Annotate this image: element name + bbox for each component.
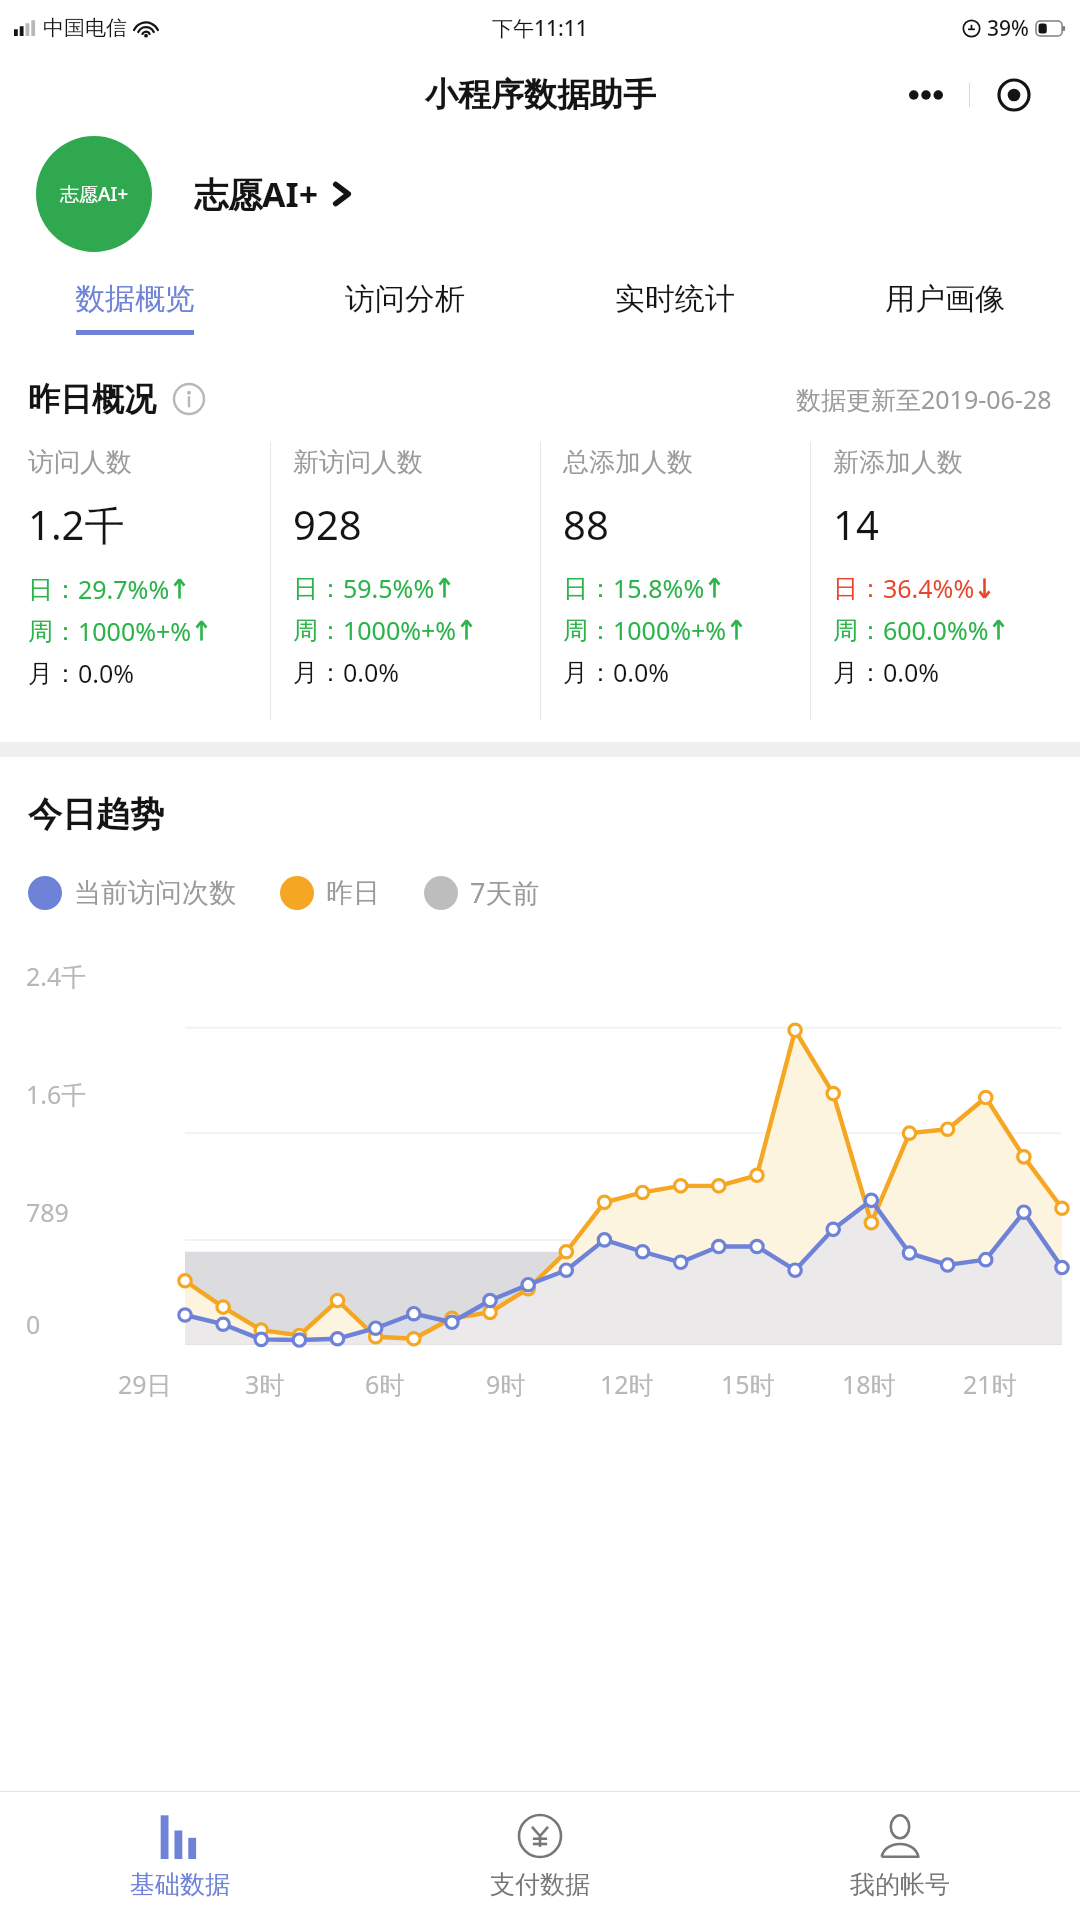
staticText: 18时 xyxy=(842,1367,896,1401)
staticText: 今日趋势 xyxy=(28,793,164,836)
button[interactable]: Info xyxy=(172,382,206,416)
staticText: 1000%+% xyxy=(343,613,457,647)
staticText: 14 xyxy=(833,497,879,551)
staticText: 月： xyxy=(28,658,78,689)
staticText: 29日 xyxy=(118,1367,172,1401)
button[interactable]: 访问分析 xyxy=(270,274,540,362)
staticText: 昨日 xyxy=(326,876,380,910)
staticText: 新添加人数 xyxy=(833,446,963,479)
staticText: 7天前 xyxy=(470,874,540,911)
staticText: 志愿AI+ xyxy=(194,171,319,217)
staticText: 0.0% xyxy=(343,655,400,689)
staticText: 我的帐号 xyxy=(850,1869,950,1900)
staticText: 访问分析 xyxy=(345,280,465,318)
staticText: 基础数据 xyxy=(130,1869,230,1900)
staticText: 15.8%% xyxy=(613,571,705,605)
staticText: 0.0% xyxy=(78,656,135,690)
staticText: 周： xyxy=(28,616,78,647)
staticText: 3时 xyxy=(245,1367,285,1401)
staticText: 访问人数 xyxy=(28,446,132,479)
staticText: 2.4千 xyxy=(26,959,87,993)
staticText: 周： xyxy=(563,615,613,646)
staticText: 15时 xyxy=(721,1367,775,1401)
button[interactable]: 用户画像 xyxy=(810,274,1080,362)
staticText: 日： xyxy=(28,574,78,605)
staticText: 1.2千 xyxy=(28,497,125,552)
staticText: 36.4%% xyxy=(883,571,975,605)
button[interactable]: 基础数据 xyxy=(0,1792,360,1920)
staticText: 日： xyxy=(563,573,613,604)
staticText: 新访问人数 xyxy=(293,446,423,479)
staticText: 月： xyxy=(293,657,343,688)
staticText: 实时统计 xyxy=(615,280,735,318)
button[interactable]: 支付数据 xyxy=(360,1792,720,1920)
staticText: 月： xyxy=(563,657,613,688)
staticText: 600.0%% xyxy=(883,613,989,647)
button[interactable]: 数据概览 xyxy=(0,274,270,362)
staticText: 支付数据 xyxy=(490,1869,590,1900)
button[interactable]: 志愿AI+ xyxy=(0,134,1080,254)
staticText: 1.6千 xyxy=(26,1077,87,1111)
staticText: 39% xyxy=(987,14,1029,43)
staticText: 月： xyxy=(833,657,883,688)
staticText: 下午11:11 xyxy=(492,14,588,43)
staticText: 数据概览 xyxy=(75,280,195,318)
staticText: 小程序数据助手 xyxy=(425,74,656,116)
button[interactable]: Close xyxy=(970,70,1058,120)
staticText: 昨日概况 xyxy=(28,379,156,419)
staticText: 928 xyxy=(293,497,362,551)
staticText: 789 xyxy=(26,1195,69,1229)
staticText: 88 xyxy=(563,497,609,551)
staticText: 21时 xyxy=(963,1367,1017,1401)
staticText: 中国电信 xyxy=(43,15,127,41)
button[interactable]: More xyxy=(882,70,969,120)
staticText: 29.7%% xyxy=(78,572,170,606)
button[interactable]: 我的帐号 xyxy=(720,1792,1080,1920)
staticText: 当前访问次数 xyxy=(74,876,236,910)
staticText: 数据更新至2019-06-28 xyxy=(796,382,1052,416)
button[interactable]: 实时统计 xyxy=(540,274,810,362)
staticText: 总添加人数 xyxy=(563,446,693,479)
staticText: 6时 xyxy=(365,1367,405,1401)
staticText: 1000%+% xyxy=(78,614,192,648)
staticText: 志愿AI+ xyxy=(60,181,129,207)
staticText: 1000%+% xyxy=(613,613,727,647)
staticText: 59.5%% xyxy=(343,571,435,605)
staticText: 日： xyxy=(293,573,343,604)
staticText: 用户画像 xyxy=(885,280,1005,318)
staticText: 0.0% xyxy=(613,655,670,689)
staticText: 0.0% xyxy=(883,655,940,689)
staticText: 0 xyxy=(26,1307,41,1341)
staticText: 12时 xyxy=(600,1367,654,1401)
staticText: 日： xyxy=(833,573,883,604)
staticText: 周： xyxy=(833,615,883,646)
staticText: 9时 xyxy=(486,1367,526,1401)
staticText: 周： xyxy=(293,615,343,646)
